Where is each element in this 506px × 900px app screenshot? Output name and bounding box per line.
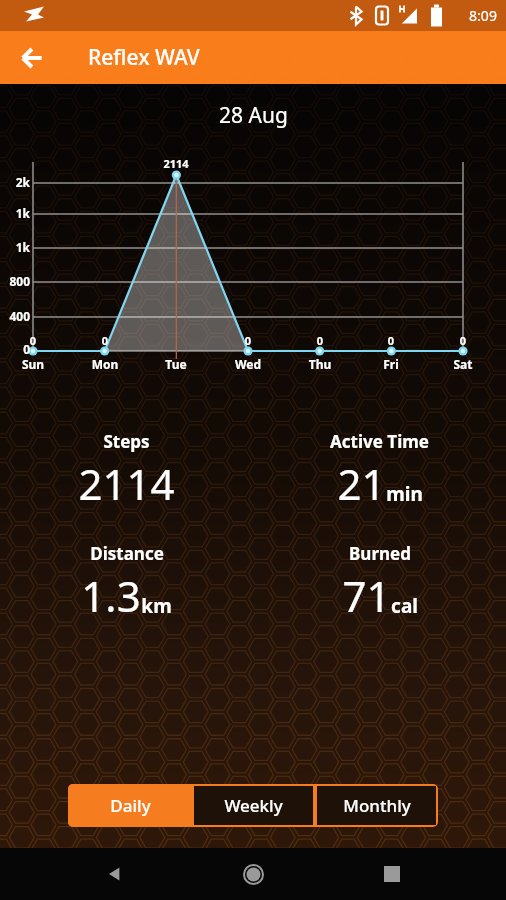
button[interactable]: Daily <box>68 784 192 827</box>
staticText: Sat <box>441 356 485 372</box>
staticText: 800 <box>2 273 30 289</box>
staticText: 1.3 <box>81 567 141 624</box>
staticText: 2k <box>2 174 30 190</box>
button[interactable]: Burned <box>253 542 506 624</box>
staticText: 0 <box>300 333 340 348</box>
staticText: Reflex WAV <box>88 43 200 72</box>
staticText: Active Time <box>330 430 429 453</box>
staticText: 0 <box>85 333 125 348</box>
staticText: 2114 <box>78 455 175 512</box>
staticText: 8:09 <box>469 6 497 25</box>
staticText: 0 <box>443 333 483 348</box>
button[interactable]: Weekly <box>192 784 315 827</box>
staticText: 0 <box>371 333 411 348</box>
staticText: Fri <box>369 356 413 372</box>
button[interactable]: Monthly <box>315 784 438 827</box>
staticText: cal <box>391 593 418 619</box>
staticText: 1k <box>2 239 30 255</box>
staticText: 28 Aug <box>219 101 288 130</box>
staticText: Daily <box>110 794 151 817</box>
staticText: 0 <box>2 341 30 357</box>
staticText: Thu <box>298 356 342 372</box>
staticText: 1k <box>2 205 30 221</box>
staticText: 71 <box>342 567 391 624</box>
staticText: km <box>141 593 172 619</box>
button[interactable]: Recent apps <box>368 850 416 898</box>
button[interactable]: Active Time <box>253 430 506 512</box>
staticText: 0 <box>13 333 53 348</box>
staticText: 21 <box>337 455 386 512</box>
staticText: Wed <box>226 356 270 372</box>
staticText: Weekly <box>224 794 283 817</box>
staticText: Steps <box>103 430 150 453</box>
button[interactable]: Steps <box>0 430 253 512</box>
button[interactable]: Back <box>91 850 139 898</box>
button[interactable]: Home <box>229 850 277 898</box>
staticText: 2114 <box>156 156 196 171</box>
staticText: Burned <box>349 542 411 565</box>
button[interactable]: Back <box>10 36 54 80</box>
staticText: 400 <box>2 308 30 324</box>
staticText: Sun <box>11 356 55 372</box>
staticText: Distance <box>90 542 164 565</box>
staticText: min <box>386 481 423 507</box>
staticText: Monthly <box>343 794 411 817</box>
button[interactable]: Distance <box>0 542 253 624</box>
staticText: Mon <box>83 356 127 372</box>
staticText: 0 <box>228 333 268 348</box>
other: Reflex WAV app bar <box>0 31 506 84</box>
staticText: Tue <box>154 356 198 372</box>
